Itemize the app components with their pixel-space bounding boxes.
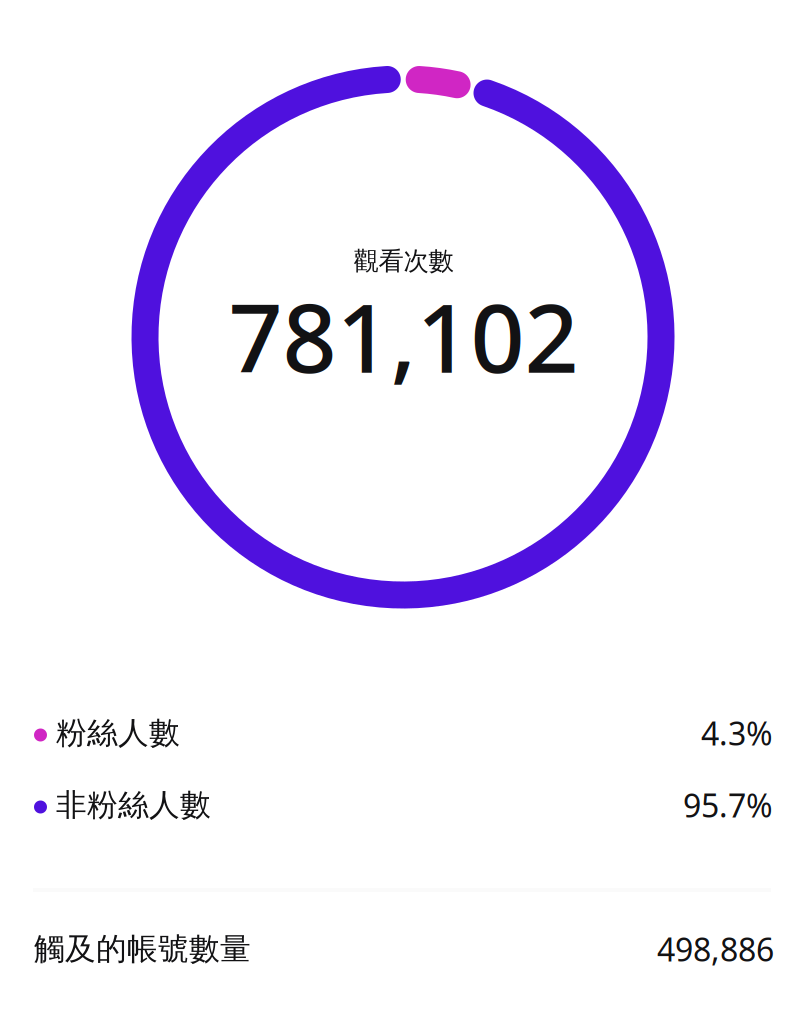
staticText: 4.3% xyxy=(701,712,773,754)
button[interactable]: 粉絲人數 xyxy=(0,697,807,769)
staticText: 非粉絲人數 xyxy=(56,786,211,824)
staticText: 觀看次數 xyxy=(353,245,453,276)
staticText: 觸及的帳號數量 xyxy=(34,930,251,968)
staticText: 粉絲人數 xyxy=(56,714,180,752)
button[interactable]: 觸及的帳號數量 xyxy=(0,913,807,985)
button[interactable]: 非粉絲人數 xyxy=(0,769,807,841)
staticText: 498,886 xyxy=(657,928,774,970)
staticText: 95.7% xyxy=(683,784,773,826)
staticText: 781,102 xyxy=(228,273,578,399)
